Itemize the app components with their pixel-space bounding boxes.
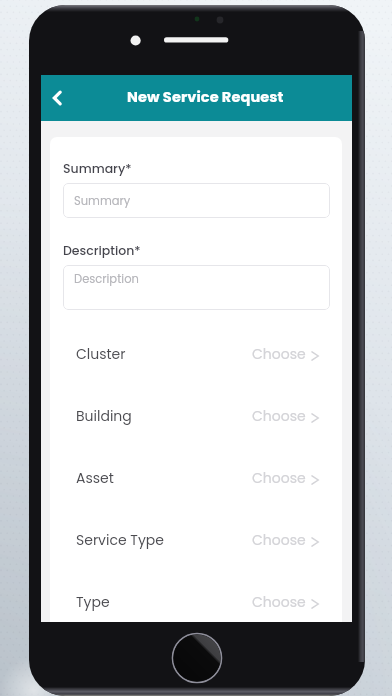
staticText: Summary*: [63, 160, 132, 177]
button[interactable]: Description: [63, 265, 330, 310]
staticText: Description: [74, 271, 139, 287]
staticText: Cluster: [76, 344, 126, 364]
staticText: New Service Request: [127, 87, 284, 107]
staticText: Choose: [252, 592, 306, 612]
staticText: Choose: [252, 468, 306, 488]
staticText: Choose: [252, 530, 306, 550]
staticText: Type: [76, 592, 110, 612]
button[interactable]: Summary: [63, 183, 330, 218]
button[interactable]: Back: [37, 75, 77, 121]
button[interactable]: Asset: [50, 447, 342, 509]
staticText: Asset: [76, 468, 114, 488]
staticText: Description*: [63, 242, 141, 259]
button[interactable]: Building: [50, 385, 342, 447]
button[interactable]: Home: [172, 633, 222, 683]
staticText: Choose: [252, 344, 306, 364]
button[interactable]: Cluster: [50, 323, 342, 385]
button[interactable]: Service Type: [50, 509, 342, 571]
staticText: Building: [76, 406, 132, 426]
button[interactable]: Type: [50, 571, 342, 622]
staticText: Choose: [252, 406, 306, 426]
staticText: Service Type: [76, 530, 164, 550]
staticText: Summary: [74, 193, 131, 209]
